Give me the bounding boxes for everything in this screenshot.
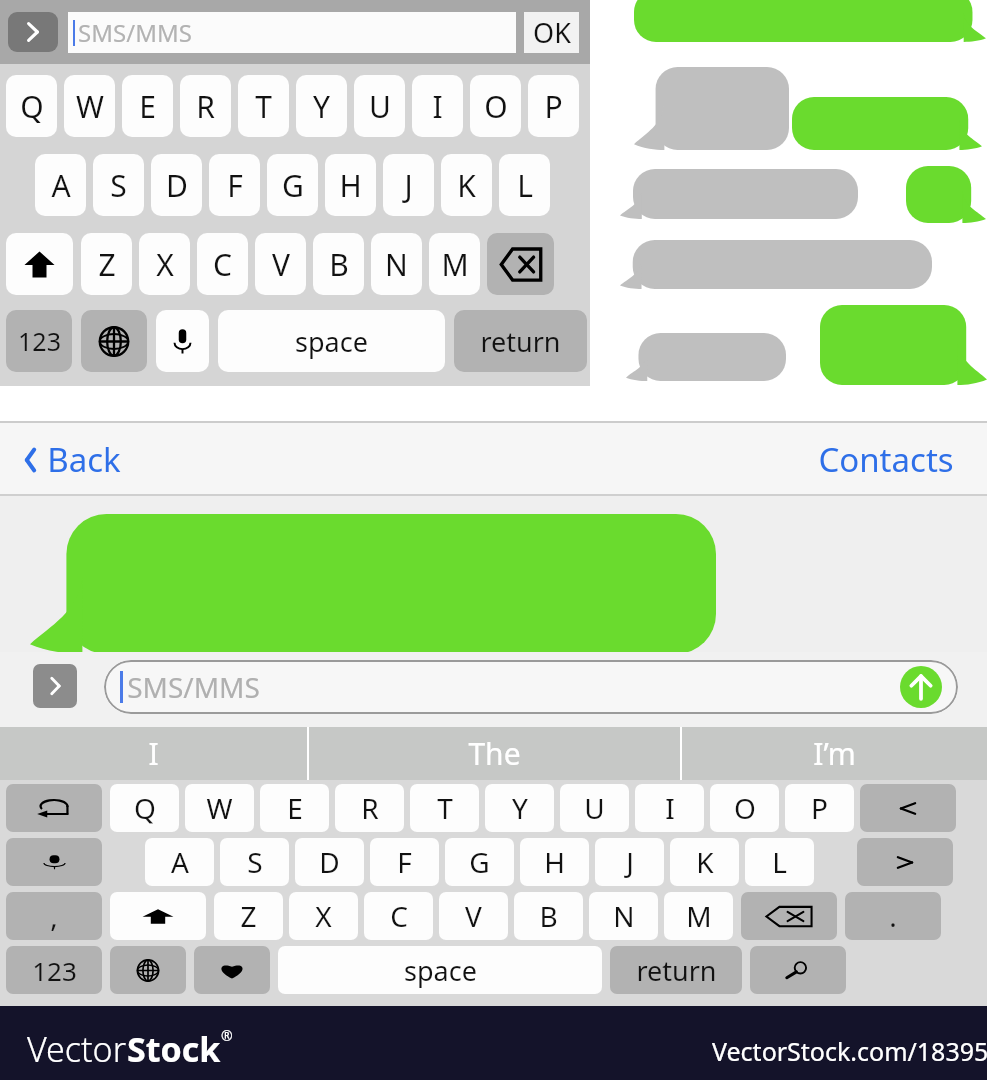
button[interactable]: 123 bbox=[6, 946, 102, 994]
button[interactable]: Back bbox=[22, 437, 121, 482]
button[interactable]: D bbox=[151, 154, 202, 216]
button[interactable]: B bbox=[514, 892, 583, 940]
button[interactable]: B bbox=[313, 233, 364, 295]
button[interactable]: Z bbox=[81, 233, 132, 295]
button[interactable]: E bbox=[122, 75, 173, 137]
staticText: . bbox=[889, 897, 897, 935]
button[interactable]: SMS/MMS bbox=[68, 12, 516, 53]
button[interactable]: Undo bbox=[6, 784, 102, 832]
button[interactable]: Attach bbox=[33, 664, 77, 708]
button[interactable]: W bbox=[185, 784, 254, 832]
button[interactable]: W bbox=[64, 75, 115, 137]
button[interactable]: R bbox=[335, 784, 404, 832]
button[interactable]: Z bbox=[214, 892, 283, 940]
button[interactable]: O bbox=[710, 784, 779, 832]
button[interactable]: Contacts bbox=[818, 437, 954, 482]
button[interactable]: A bbox=[145, 838, 214, 886]
button[interactable]: return bbox=[454, 310, 587, 372]
button[interactable]: Backspace bbox=[741, 892, 837, 940]
button[interactable]: M bbox=[664, 892, 733, 940]
button[interactable]: P bbox=[528, 75, 579, 137]
button[interactable]: Send message bbox=[900, 666, 942, 708]
button[interactable]: Y bbox=[485, 784, 554, 832]
button[interactable]: X bbox=[139, 233, 190, 295]
button[interactable]: L bbox=[499, 154, 550, 216]
button[interactable]: H bbox=[325, 154, 376, 216]
staticText: U bbox=[584, 789, 605, 827]
staticText: W bbox=[206, 789, 233, 827]
button[interactable]: Change language bbox=[81, 310, 147, 372]
button[interactable]: C bbox=[197, 233, 248, 295]
button[interactable]: U bbox=[560, 784, 629, 832]
staticText: Y bbox=[313, 86, 330, 127]
button[interactable]: V bbox=[255, 233, 306, 295]
button[interactable]: F bbox=[370, 838, 439, 886]
button[interactable]: space bbox=[218, 310, 445, 372]
button[interactable]: 123 bbox=[6, 310, 72, 372]
button[interactable]: Voice input bbox=[156, 310, 209, 372]
button[interactable]: F bbox=[209, 154, 260, 216]
staticText: J bbox=[626, 843, 634, 881]
button[interactable]: N bbox=[589, 892, 658, 940]
button[interactable]: Send bbox=[8, 12, 58, 52]
button[interactable]: Y bbox=[296, 75, 347, 137]
staticText: A bbox=[171, 843, 189, 881]
button[interactable]: D bbox=[295, 838, 364, 886]
button[interactable]: Change language bbox=[110, 946, 186, 994]
staticText: F bbox=[227, 165, 243, 206]
staticText: H bbox=[339, 165, 362, 206]
button[interactable]: T bbox=[238, 75, 289, 137]
button[interactable]: G bbox=[445, 838, 514, 886]
button[interactable]: Backspace bbox=[487, 233, 554, 295]
button[interactable]: space bbox=[278, 946, 602, 994]
button[interactable]: , bbox=[6, 892, 102, 940]
button[interactable]: OK bbox=[524, 12, 579, 53]
button[interactable]: Voice input bbox=[6, 838, 102, 886]
staticText: S bbox=[247, 843, 263, 881]
button[interactable]: P bbox=[785, 784, 854, 832]
button[interactable]: V bbox=[439, 892, 508, 940]
button[interactable]: Q bbox=[110, 784, 179, 832]
button[interactable]: E bbox=[260, 784, 329, 832]
button[interactable]: return bbox=[610, 946, 742, 994]
button[interactable]: I bbox=[412, 75, 463, 137]
staticText: B bbox=[539, 897, 558, 935]
button[interactable]: Emoji bbox=[194, 946, 270, 994]
button[interactable]: I’m bbox=[682, 727, 987, 780]
button[interactable]: J bbox=[595, 838, 664, 886]
button[interactable]: X bbox=[289, 892, 358, 940]
button[interactable]: O bbox=[470, 75, 521, 137]
button[interactable]: The bbox=[309, 727, 680, 780]
button[interactable]: S bbox=[93, 154, 144, 216]
staticText: Z bbox=[98, 244, 116, 285]
button[interactable]: A bbox=[35, 154, 86, 216]
button[interactable]: J bbox=[383, 154, 434, 216]
staticText: 123 bbox=[18, 324, 61, 358]
button[interactable]: Search bbox=[750, 946, 846, 994]
button[interactable]: Shift bbox=[110, 892, 206, 940]
button[interactable]: C bbox=[364, 892, 433, 940]
button[interactable]: K bbox=[670, 838, 739, 886]
button[interactable]: H bbox=[520, 838, 589, 886]
button[interactable]: . bbox=[845, 892, 941, 940]
button[interactable]: R bbox=[180, 75, 231, 137]
staticText: N bbox=[613, 897, 635, 935]
button[interactable]: N bbox=[371, 233, 422, 295]
button[interactable]: T bbox=[410, 784, 479, 832]
button[interactable]: Cursor right bbox=[857, 838, 953, 886]
button[interactable]: SMS/MMS bbox=[104, 660, 958, 714]
staticText: O bbox=[484, 86, 508, 127]
button[interactable]: U bbox=[354, 75, 405, 137]
staticText: I’m bbox=[813, 733, 856, 774]
button[interactable]: Cursor left bbox=[860, 784, 956, 832]
staticText: The bbox=[468, 733, 521, 774]
button[interactable]: G bbox=[267, 154, 318, 216]
button[interactable]: L bbox=[745, 838, 814, 886]
button[interactable]: I bbox=[0, 727, 307, 780]
button[interactable]: Q bbox=[6, 75, 57, 137]
button[interactable]: S bbox=[220, 838, 289, 886]
button[interactable]: I bbox=[635, 784, 704, 832]
button[interactable]: M bbox=[429, 233, 480, 295]
button[interactable]: K bbox=[441, 154, 492, 216]
button[interactable]: Shift bbox=[6, 233, 73, 295]
